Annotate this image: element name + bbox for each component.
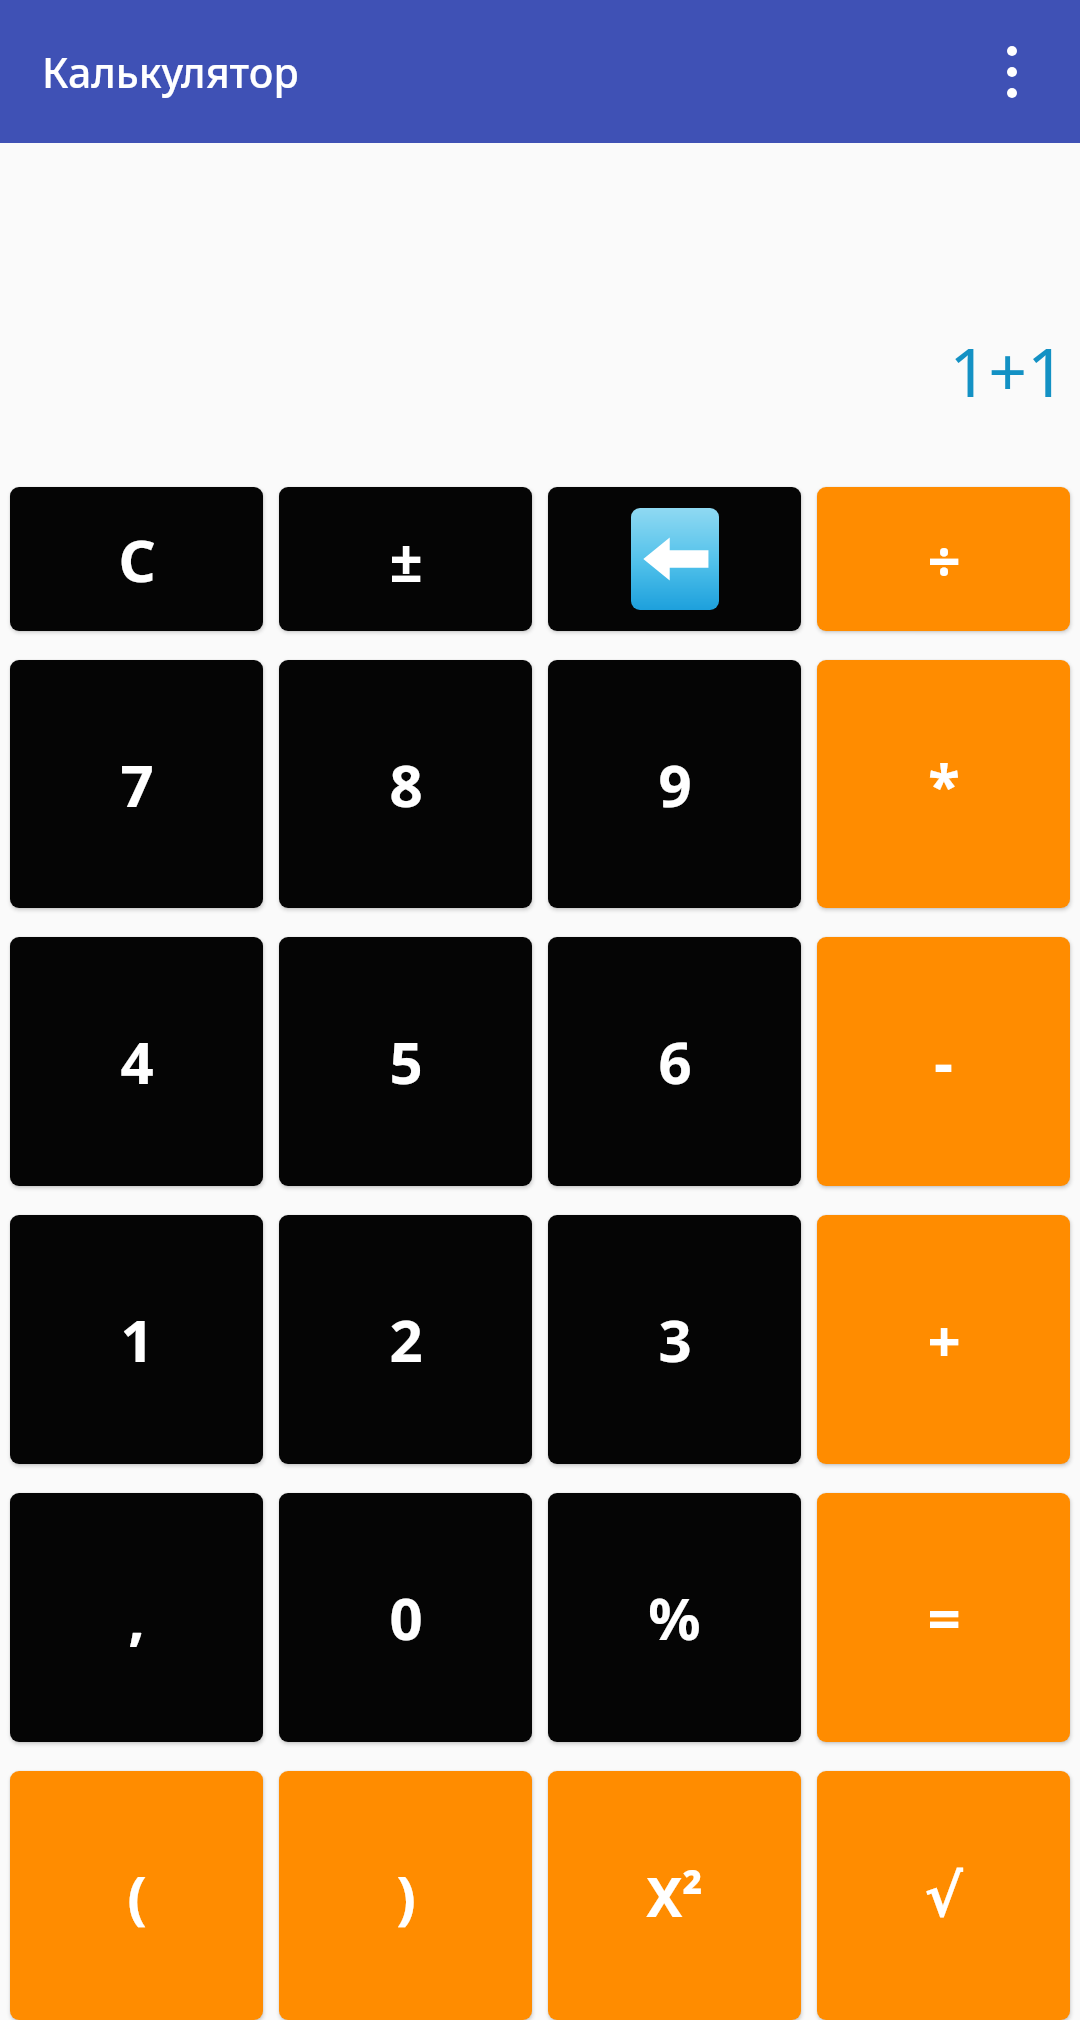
button[interactable]: 3 (548, 1215, 801, 1464)
button[interactable]: 1 (10, 1215, 263, 1464)
button[interactable]: √ (817, 1771, 1070, 2020)
staticText: - (934, 1022, 953, 1101)
staticText: + (927, 1300, 961, 1379)
button[interactable]: 0 (279, 1493, 532, 1742)
button[interactable]: * (817, 660, 1070, 908)
staticText: 2 (389, 1300, 423, 1379)
button[interactable]: 6 (548, 937, 801, 1186)
staticText: 3 (658, 1300, 692, 1379)
staticText: = (927, 1578, 961, 1657)
button[interactable]: = (817, 1493, 1070, 1742)
staticText: 1 (120, 1300, 154, 1379)
staticText: ) (396, 1856, 416, 1935)
button[interactable]: 4 (10, 937, 263, 1186)
staticText: 4 (120, 1022, 154, 1101)
button[interactable]: ÷ (817, 487, 1070, 631)
button[interactable]: ) (279, 1771, 532, 2020)
button[interactable]: + (817, 1215, 1070, 1464)
button[interactable]: , (10, 1493, 263, 1742)
button[interactable]: X² (548, 1771, 801, 2020)
button[interactable]: % (548, 1493, 801, 1742)
staticText: , (128, 1578, 145, 1657)
button[interactable]: - (817, 937, 1070, 1186)
staticText: X² (646, 1859, 703, 1933)
staticText: % (648, 1578, 701, 1657)
staticText: 9 (658, 745, 692, 824)
staticText: 5 (389, 1022, 423, 1101)
button[interactable]: ( (10, 1771, 263, 2020)
staticText: Калькулятор (42, 44, 299, 100)
staticText: 8 (389, 745, 423, 824)
button[interactable]: 8 (279, 660, 532, 908)
staticText: 6 (658, 1022, 692, 1101)
staticText: 7 (120, 745, 154, 824)
button[interactable]: 5 (279, 937, 532, 1186)
button[interactable]: ± (279, 487, 532, 631)
staticText: √ (924, 1862, 963, 1930)
staticText: * (928, 745, 960, 824)
staticText: ÷ (927, 520, 961, 599)
staticText: ± (389, 520, 423, 599)
button[interactable]: 7 (10, 660, 263, 908)
staticText: ( (127, 1856, 147, 1935)
staticText: 0 (389, 1578, 423, 1657)
button[interactable]: 9 (548, 660, 801, 908)
staticText: 1+1 (949, 324, 1066, 417)
button[interactable]: More options (964, 24, 1060, 120)
button[interactable]: Backspace (548, 487, 801, 631)
staticText: C (118, 520, 156, 599)
button[interactable]: C (10, 487, 263, 631)
button[interactable]: 2 (279, 1215, 532, 1464)
